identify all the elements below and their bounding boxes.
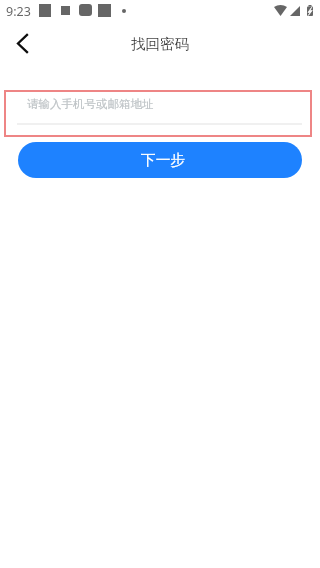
staticText: 找回密码 (131, 35, 189, 53)
staticText: 9:23 (6, 3, 31, 20)
button[interactable]: 请输入手机号或邮箱地址 (4, 90, 312, 137)
button[interactable]: 返回 (0, 22, 43, 65)
staticText: 下一步 (141, 151, 186, 170)
button[interactable]: 下一步 (18, 142, 302, 178)
staticText: 请输入手机号或邮箱地址 (27, 97, 154, 111)
